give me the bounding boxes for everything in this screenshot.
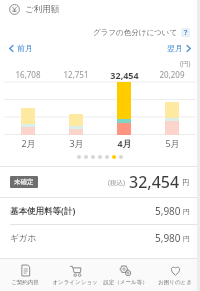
staticText: 3月 — [69, 137, 84, 149]
button[interactable]: 前月 — [7, 42, 35, 54]
staticText: 2月 — [21, 137, 36, 149]
staticText: 翌月 — [167, 43, 183, 53]
button[interactable]: ギガホ — [0, 225, 200, 251]
button[interactable]: 4月 — [100, 135, 148, 151]
staticText: 円 — [182, 178, 190, 187]
button[interactable]: グラフの色分けについて — [91, 27, 192, 38]
button[interactable]: 3月 — [52, 135, 100, 151]
staticText: 設定（メール等） — [103, 279, 148, 286]
staticText: 円 — [183, 207, 190, 216]
staticText: ? — [184, 28, 188, 37]
staticText: 5,980 — [155, 204, 181, 218]
staticText: 未確定 — [14, 178, 34, 186]
staticText: グラフの色分けについて — [93, 28, 178, 37]
button[interactable]: 5月 — [148, 135, 196, 151]
staticText: 前月 — [17, 43, 33, 53]
button[interactable]: 翌月 — [165, 42, 193, 54]
staticText: (円) — [180, 59, 191, 68]
staticText: ご契約内容 — [11, 279, 39, 286]
staticText: (税込) — [108, 178, 125, 187]
staticText: 32,454 — [110, 69, 139, 81]
button[interactable]: オンラインショップ — [50, 258, 100, 291]
staticText: 5,980 — [155, 231, 181, 245]
staticText: ご利用額 — [25, 4, 60, 15]
staticText: ギガホ — [10, 233, 37, 244]
staticText: 円 — [183, 234, 190, 243]
button[interactable]: 設定（メール等） — [100, 258, 150, 291]
button[interactable]: 2月 — [4, 135, 52, 151]
staticText: 4月 — [117, 137, 132, 149]
staticText: 32,454 — [129, 171, 180, 193]
button[interactable]: 基本使用料等(計) — [0, 198, 200, 224]
staticText: 基本使用料等(計) — [10, 205, 76, 217]
staticText: オンラインショップ — [50, 279, 100, 286]
button[interactable]: お困りのとき — [150, 258, 200, 291]
staticText: 20,209 — [159, 69, 185, 80]
button[interactable]: ご契約内容 — [0, 258, 50, 291]
staticText: お困りのとき — [158, 279, 192, 286]
staticText: 16,708 — [15, 69, 41, 80]
staticText: 5月 — [165, 137, 180, 149]
staticText: 12,751 — [63, 69, 89, 80]
